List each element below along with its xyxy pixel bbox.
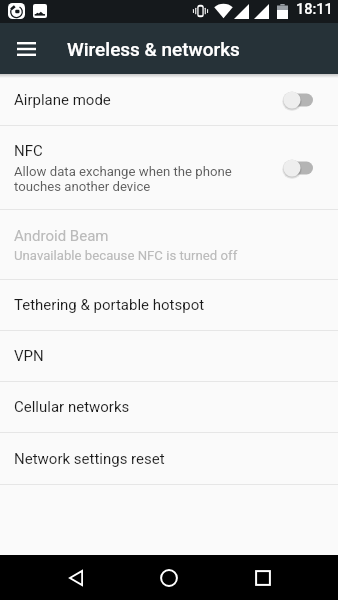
button[interactable]: Tethering & portable hotspot — [0, 280, 338, 330]
staticText: Unavailable because NFC is turned off — [14, 248, 238, 263]
staticText: Wireless & networks — [67, 38, 240, 60]
staticText: NFC — [14, 142, 43, 160]
staticText: Network settings reset — [14, 450, 165, 468]
staticText: Cellular networks — [14, 398, 130, 416]
staticText: Android Beam — [14, 227, 109, 245]
button[interactable]: Network settings reset — [0, 433, 338, 484]
staticText: VPN — [14, 347, 44, 365]
button[interactable]: VPN — [0, 331, 338, 381]
button[interactable]: Back — [47, 555, 104, 600]
button[interactable]: Cellular networks — [0, 382, 338, 432]
staticText: Tethering & portable hotspot — [14, 296, 205, 314]
button[interactable]: Android Beam — [0, 210, 338, 279]
button[interactable]: NFC — [0, 126, 338, 209]
staticText: Allow data exchange when the phone touch… — [14, 164, 232, 194]
button[interactable]: Open navigation menu — [6, 29, 46, 69]
button[interactable]: Airplane mode — [0, 74, 338, 125]
staticText: Airplane mode — [14, 91, 111, 109]
button[interactable]: Home — [140, 555, 198, 600]
button[interactable]: Recent apps — [234, 555, 292, 600]
staticText: 18:11 — [296, 1, 333, 18]
